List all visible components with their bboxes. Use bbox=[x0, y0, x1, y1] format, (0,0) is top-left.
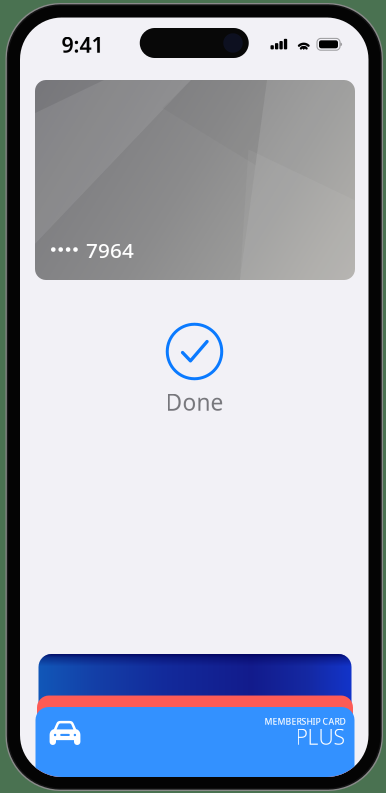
staticText: MEMBERSHIP CARD bbox=[264, 715, 345, 727]
staticText: 7964 bbox=[86, 236, 134, 264]
staticText: 9:41 bbox=[61, 30, 103, 59]
staticText: PLUS bbox=[295, 722, 345, 751]
staticText: Done bbox=[165, 387, 223, 417]
